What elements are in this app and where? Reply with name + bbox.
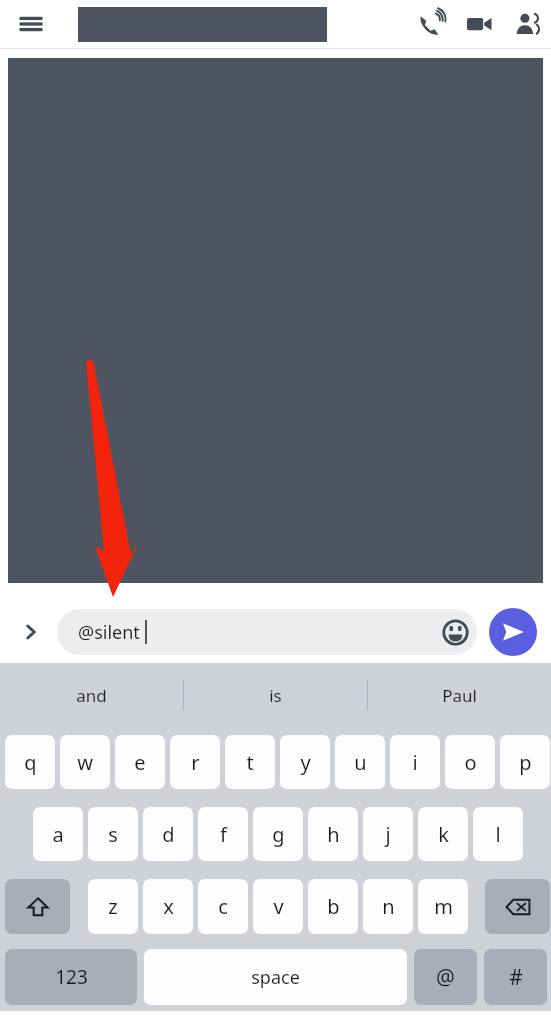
button[interactable]: n — [363, 879, 413, 934]
staticText: k — [438, 821, 449, 848]
button[interactable]: d — [143, 807, 193, 861]
button[interactable]: b — [308, 879, 358, 934]
button[interactable]: g — [253, 807, 303, 861]
button[interactable]: and — [0, 663, 183, 727]
staticText: b — [327, 893, 340, 920]
staticText: f — [220, 821, 227, 848]
button[interactable]: Backspace — [485, 879, 550, 934]
button[interactable]: j — [363, 807, 413, 861]
button[interactable]: v — [253, 879, 303, 934]
button[interactable]: o — [445, 735, 495, 789]
staticText: @ — [436, 963, 455, 992]
button[interactable]: Expand — [10, 611, 52, 653]
button[interactable]: t — [225, 735, 275, 789]
button[interactable]: z — [88, 879, 138, 934]
button[interactable]: Wifi call — [407, 0, 455, 48]
staticText: n — [382, 893, 395, 920]
staticText: d — [162, 821, 175, 848]
button[interactable]: l — [473, 807, 523, 861]
button[interactable]: e — [115, 735, 165, 789]
button[interactable]: Send — [489, 608, 537, 656]
staticText: e — [134, 749, 146, 776]
button[interactable]: a — [33, 807, 83, 861]
staticText: o — [464, 749, 477, 776]
staticText: x — [163, 893, 174, 920]
button[interactable]: @ — [414, 949, 477, 1005]
staticText: t — [246, 749, 254, 776]
button[interactable]: Paul — [368, 663, 551, 727]
button[interactable]: @silent — [57, 609, 477, 655]
staticText: y — [300, 749, 311, 776]
staticText: @silent — [78, 620, 140, 645]
button[interactable]: y — [280, 735, 330, 789]
staticText: h — [327, 821, 340, 848]
button[interactable]: Add people — [503, 0, 551, 48]
button[interactable]: Menu — [0, 0, 62, 48]
staticText: u — [354, 749, 367, 776]
button[interactable]: q — [5, 735, 55, 789]
staticText: i — [412, 749, 418, 776]
button[interactable]: Video call — [455, 0, 503, 48]
staticText: a — [52, 821, 64, 848]
button[interactable]: 123 — [5, 949, 137, 1005]
button[interactable]: Emoji — [435, 612, 475, 652]
button[interactable]: is — [184, 663, 367, 727]
button[interactable]: p — [500, 735, 550, 789]
button[interactable]: m — [418, 879, 468, 934]
button[interactable]: u — [335, 735, 385, 789]
button[interactable]: s — [88, 807, 138, 861]
staticText: j — [385, 821, 391, 848]
button[interactable]: r — [170, 735, 220, 789]
staticText: # — [509, 963, 523, 992]
staticText: w — [77, 749, 93, 776]
staticText: s — [108, 821, 118, 848]
button[interactable]: # — [484, 949, 547, 1005]
staticText: p — [519, 749, 532, 776]
staticText: v — [273, 893, 284, 920]
button[interactable]: h — [308, 807, 358, 861]
button[interactable]: Shift — [5, 879, 70, 934]
staticText: q — [24, 749, 37, 776]
staticText: z — [108, 893, 118, 920]
staticText: l — [495, 821, 501, 848]
button[interactable]: x — [143, 879, 193, 934]
button[interactable]: i — [390, 735, 440, 789]
staticText: Paul — [442, 684, 477, 707]
staticText: m — [434, 893, 453, 920]
button[interactable]: w — [60, 735, 110, 789]
staticText: g — [272, 821, 285, 848]
staticText: c — [218, 893, 228, 920]
button[interactable]: k — [418, 807, 468, 861]
staticText: 123 — [55, 964, 88, 990]
staticText: and — [76, 684, 107, 707]
button[interactable]: f — [198, 807, 248, 861]
button[interactable]: space — [144, 949, 407, 1005]
staticText: space — [251, 965, 300, 990]
staticText: r — [191, 749, 200, 776]
button[interactable]: c — [198, 879, 248, 934]
staticText: is — [269, 684, 282, 707]
